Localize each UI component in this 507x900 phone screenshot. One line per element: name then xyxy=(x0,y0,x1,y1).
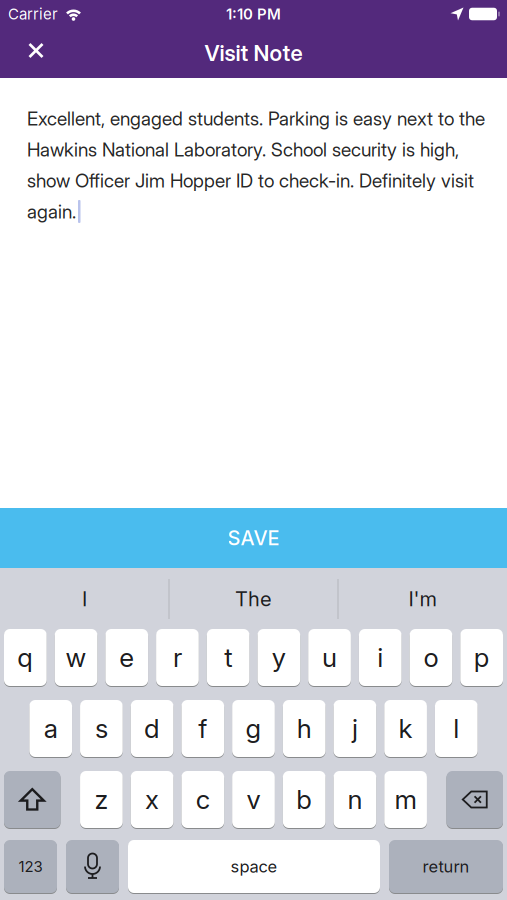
staticText: f xyxy=(198,713,207,744)
staticText: p xyxy=(474,642,490,673)
button[interactable]: g xyxy=(232,700,275,757)
staticText: a xyxy=(44,713,58,744)
staticText: z xyxy=(94,784,108,815)
staticText: t xyxy=(224,642,232,673)
staticText: I xyxy=(82,587,87,611)
button[interactable]: y xyxy=(257,629,300,686)
button[interactable]: SAVE xyxy=(0,508,507,568)
button[interactable] xyxy=(4,771,60,828)
button[interactable]: w xyxy=(55,629,97,686)
staticText: Hawkins National Laboratory. School secu… xyxy=(27,138,459,161)
button[interactable]: q xyxy=(4,629,47,686)
staticText: e xyxy=(119,642,134,673)
button[interactable]: j xyxy=(334,700,376,757)
button[interactable]: a xyxy=(29,700,72,757)
staticText: again. xyxy=(27,200,76,223)
staticText: space xyxy=(230,856,277,876)
button[interactable]: s xyxy=(80,700,123,757)
button[interactable]: b xyxy=(283,771,326,828)
staticText: y xyxy=(272,642,286,673)
staticText: 1:10 PM xyxy=(226,5,281,23)
staticText: h xyxy=(297,713,312,744)
button[interactable]: return xyxy=(389,840,503,893)
staticText: j xyxy=(352,713,358,744)
staticText: o xyxy=(423,642,438,673)
staticText: 123 xyxy=(18,857,42,875)
button[interactable]: z xyxy=(80,771,123,828)
staticText: v xyxy=(246,784,260,815)
staticText: b xyxy=(296,784,312,815)
button[interactable]: space xyxy=(128,840,380,893)
staticText: i xyxy=(377,642,383,673)
button[interactable]: k xyxy=(384,700,427,757)
button[interactable]: e xyxy=(105,629,148,686)
staticText: The xyxy=(235,587,272,611)
button[interactable]: h xyxy=(283,700,326,757)
button[interactable]: v xyxy=(232,771,275,828)
staticText: n xyxy=(347,784,362,815)
button[interactable] xyxy=(16,31,56,75)
staticText: r xyxy=(173,642,182,673)
button[interactable]: n xyxy=(334,771,376,828)
button[interactable]: l xyxy=(435,700,478,757)
staticText: SAVE xyxy=(227,526,279,550)
staticText: u xyxy=(322,642,337,673)
button[interactable]: I xyxy=(0,568,169,630)
staticText: Carrier xyxy=(8,5,58,23)
button[interactable]: d xyxy=(131,700,173,757)
staticText: show Officer Jim Hopper ID to check-in. … xyxy=(27,169,474,192)
staticText: m xyxy=(395,784,417,815)
button[interactable]: 123 xyxy=(4,840,57,893)
staticText: l xyxy=(453,713,459,744)
button[interactable]: p xyxy=(460,629,503,686)
button[interactable]: m xyxy=(384,771,427,828)
button[interactable]: u xyxy=(308,629,351,686)
staticText: Excellent, engaged students. Parking is … xyxy=(27,107,485,130)
staticText: x xyxy=(145,784,159,815)
staticText: q xyxy=(17,642,33,673)
staticText: k xyxy=(399,713,413,744)
button[interactable]: c xyxy=(181,771,224,828)
button[interactable]: r xyxy=(156,629,199,686)
button[interactable]: f xyxy=(181,700,224,757)
button[interactable] xyxy=(66,840,119,893)
button[interactable]: o xyxy=(410,629,452,686)
staticText: return xyxy=(422,856,469,876)
button[interactable]: i xyxy=(359,629,402,686)
staticText: g xyxy=(245,713,261,744)
staticText: I'm xyxy=(408,587,436,611)
staticText: s xyxy=(95,713,108,744)
staticText: w xyxy=(66,642,87,673)
staticText: d xyxy=(144,713,160,744)
staticText: Visit Note xyxy=(204,40,302,66)
staticText: c xyxy=(196,784,210,815)
button[interactable]: t xyxy=(207,629,249,686)
button[interactable]: I'm xyxy=(338,568,507,630)
button[interactable] xyxy=(446,771,503,828)
button[interactable]: x xyxy=(131,771,173,828)
button[interactable]: The xyxy=(169,568,338,630)
